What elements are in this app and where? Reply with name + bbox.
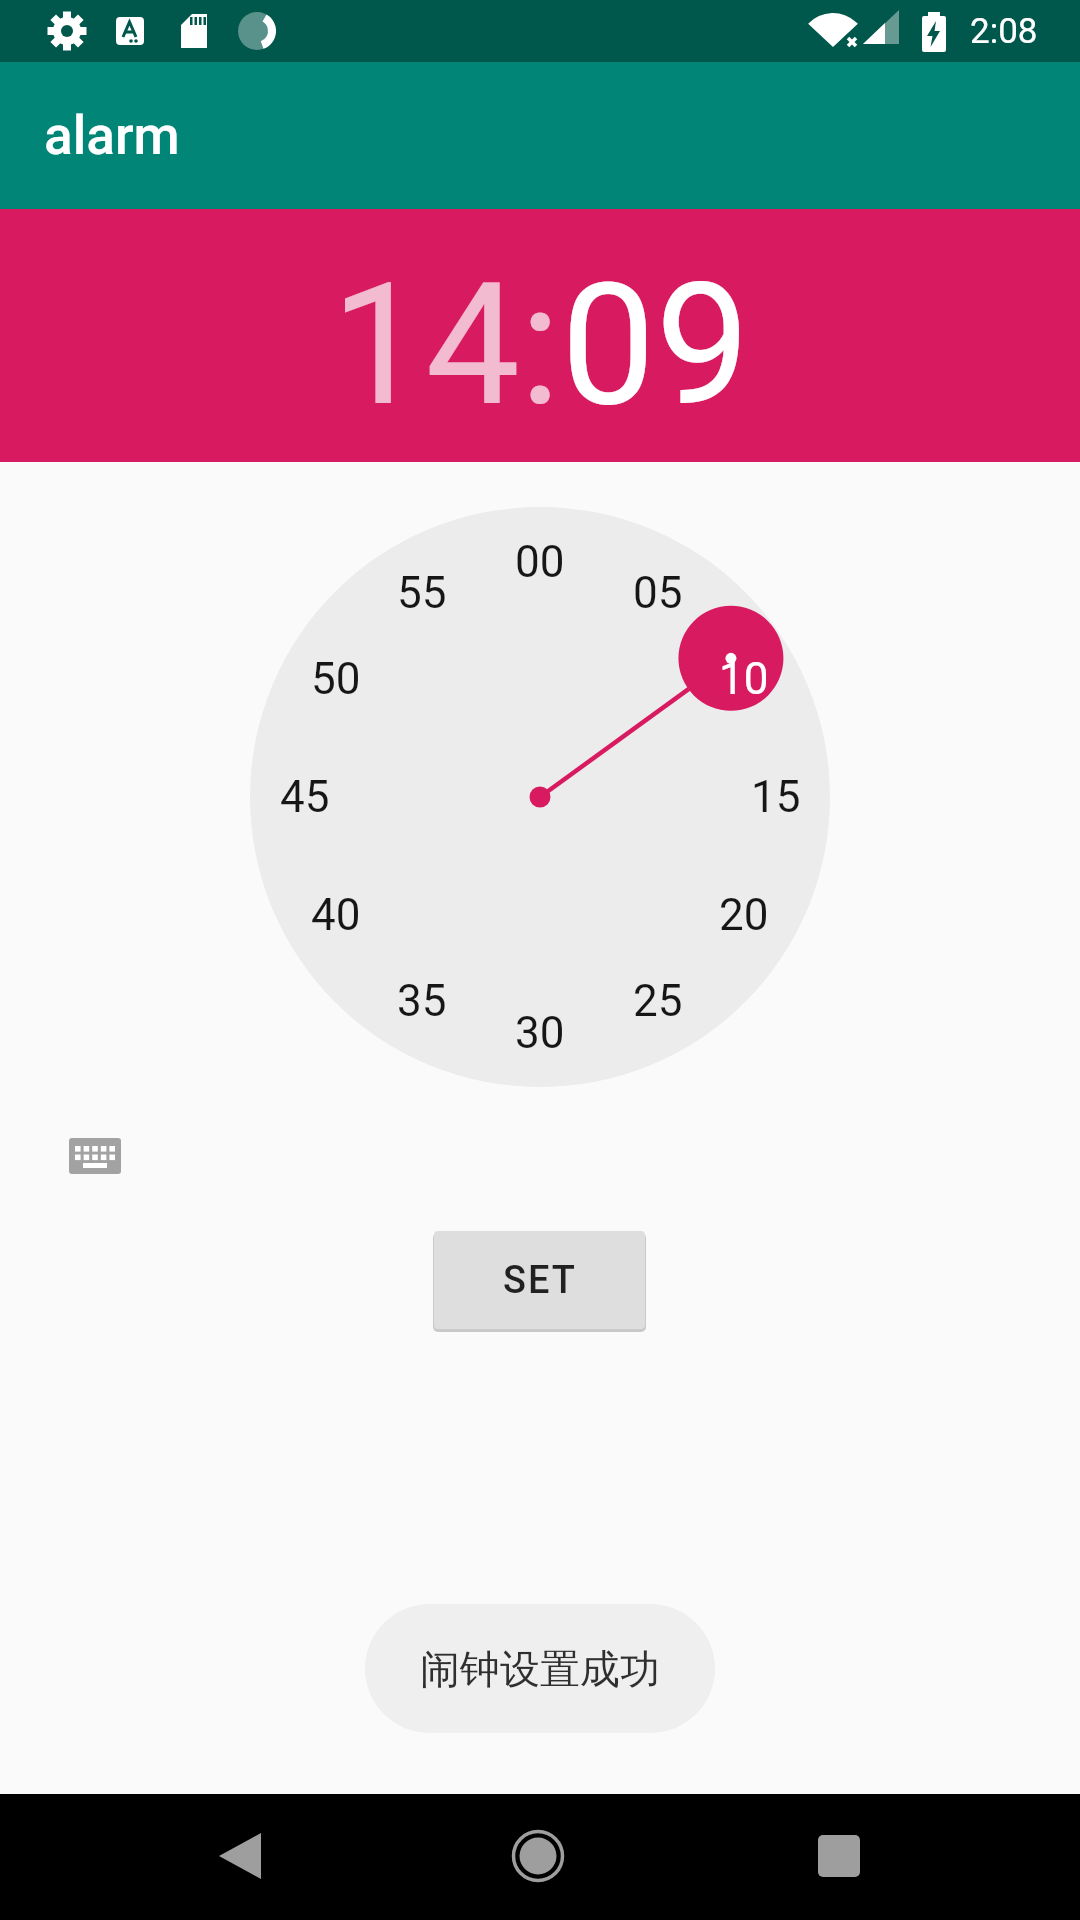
button[interactable]: 50 bbox=[276, 619, 396, 739]
button[interactable]: 35 bbox=[362, 941, 482, 1061]
staticText: 50 bbox=[311, 653, 361, 705]
button[interactable]: 55 bbox=[362, 533, 482, 653]
staticText: 05 bbox=[633, 567, 683, 619]
staticText: alarm bbox=[44, 105, 180, 167]
button[interactable] bbox=[490, 1824, 590, 1890]
staticText: 2:08 bbox=[970, 11, 1038, 52]
staticText: 55 bbox=[397, 567, 447, 619]
button[interactable] bbox=[69, 1138, 121, 1174]
button[interactable]: SET bbox=[434, 1231, 645, 1329]
staticText: 20 bbox=[719, 889, 769, 941]
button[interactable]: 40 bbox=[276, 855, 396, 975]
staticText: 30 bbox=[515, 1007, 565, 1059]
staticText: 09 bbox=[561, 247, 750, 444]
staticText: 00 bbox=[515, 536, 565, 588]
button[interactable]: 25 bbox=[598, 941, 718, 1061]
staticText: 25 bbox=[633, 975, 683, 1027]
staticText: 45 bbox=[280, 771, 330, 823]
button[interactable]: 10 bbox=[684, 619, 804, 739]
staticText: SET bbox=[503, 1258, 577, 1303]
button[interactable]: 45 bbox=[245, 737, 365, 857]
button[interactable] bbox=[790, 1824, 890, 1890]
staticText: 35 bbox=[397, 975, 447, 1027]
button[interactable]: 20 bbox=[684, 855, 804, 975]
staticText: 闹钟设置成功 bbox=[420, 1644, 660, 1694]
staticText: 40 bbox=[311, 889, 361, 941]
button[interactable]: 05 bbox=[598, 533, 718, 653]
button[interactable] bbox=[190, 1824, 290, 1890]
button[interactable]: 00 bbox=[480, 502, 600, 622]
staticText: 14: bbox=[331, 247, 561, 444]
button[interactable]: 15 bbox=[716, 737, 836, 857]
button[interactable]: 30 bbox=[480, 973, 600, 1093]
staticText: 10 bbox=[719, 653, 769, 705]
staticText: 15 bbox=[751, 771, 801, 823]
